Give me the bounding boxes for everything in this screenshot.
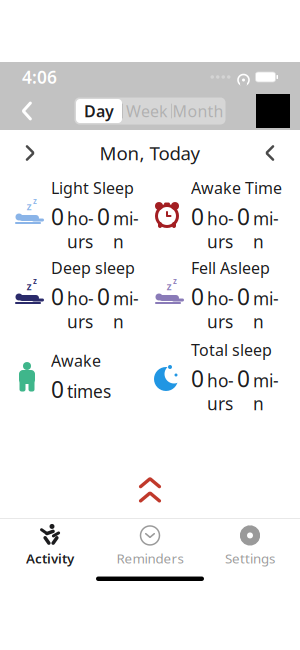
button[interactable]: Settings — [200, 523, 300, 569]
staticText: min — [253, 369, 279, 415]
staticText: Total sleep — [191, 339, 272, 360]
staticText: Light Sleep — [51, 177, 134, 198]
staticText: Mon, Today — [99, 141, 200, 165]
staticText: Settings — [225, 549, 275, 567]
staticText: min — [113, 287, 139, 333]
staticText: hours — [207, 369, 234, 415]
staticText: min — [113, 207, 139, 253]
staticText: z — [173, 276, 177, 286]
staticText: Activity — [26, 549, 74, 567]
staticText: 0 — [51, 374, 64, 404]
staticText: 0 — [97, 281, 110, 311]
button[interactable]: Week — [123, 99, 171, 123]
staticText: hours — [67, 287, 94, 333]
button[interactable]: Reminders — [100, 523, 200, 569]
staticText: 0 — [237, 363, 250, 393]
staticText: 0 — [51, 281, 64, 311]
staticText: Awake — [51, 350, 101, 371]
staticText: 0 — [191, 281, 204, 311]
staticText: 0 — [191, 201, 204, 231]
staticText: z — [166, 279, 171, 293]
staticText: z — [26, 279, 31, 293]
button[interactable]: Day — [76, 99, 122, 123]
staticText: Week — [126, 100, 168, 122]
staticText: z — [26, 199, 31, 213]
button[interactable]: Month — [172, 99, 224, 123]
staticText: Fell Asleep — [191, 257, 270, 278]
button[interactable]: Previous day — [8, 136, 52, 170]
staticText: hours — [67, 207, 94, 253]
staticText: 0 — [51, 201, 64, 231]
button[interactable]: Back — [10, 94, 44, 128]
staticText: 0 — [97, 201, 110, 231]
staticText: Day — [84, 100, 114, 122]
staticText: Month — [172, 100, 223, 122]
staticText: 0 — [237, 281, 250, 311]
button[interactable]: Next day — [248, 136, 292, 170]
staticText: Reminders — [116, 549, 183, 567]
staticText: 4:06 — [22, 65, 57, 88]
staticText: hours — [207, 287, 234, 333]
staticText: hours — [207, 207, 234, 253]
staticText: times — [67, 380, 111, 403]
staticText: Awake Time — [191, 177, 282, 198]
staticText: min — [253, 287, 279, 333]
button[interactable]: Activity — [0, 523, 100, 569]
staticText: 0 — [191, 363, 204, 393]
staticText: z — [33, 276, 37, 286]
button[interactable]: Show more — [120, 470, 180, 510]
staticText: 0 — [237, 201, 250, 231]
staticText: Deep sleep — [51, 257, 135, 278]
staticText: z — [33, 196, 37, 206]
staticText: min — [253, 207, 279, 253]
